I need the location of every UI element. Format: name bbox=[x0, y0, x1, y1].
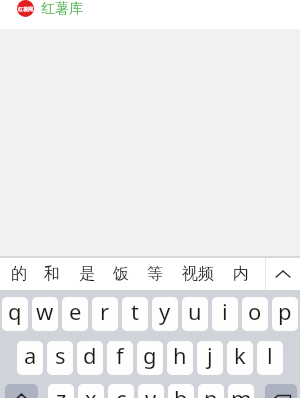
button[interactable]: m bbox=[228, 384, 254, 398]
staticText: k bbox=[234, 341, 246, 370]
button[interactable]: 内 bbox=[228, 258, 254, 290]
staticText: d bbox=[83, 341, 97, 370]
staticText: 等 bbox=[147, 264, 163, 284]
staticText: j bbox=[207, 341, 213, 370]
staticText: s bbox=[55, 341, 66, 370]
button[interactable]: r bbox=[92, 297, 118, 331]
button[interactable]: n bbox=[198, 384, 224, 398]
staticText: q bbox=[8, 297, 22, 326]
button[interactable]: 等 bbox=[142, 258, 168, 290]
staticText: h bbox=[173, 341, 187, 370]
staticText: 红薯库 bbox=[41, 0, 83, 17]
button[interactable]: 视频 bbox=[177, 258, 219, 290]
staticText: b bbox=[174, 384, 188, 398]
button[interactable]: u bbox=[182, 297, 208, 331]
button[interactable]: Backspace bbox=[265, 384, 297, 398]
button[interactable]: 红薯网 logo bbox=[17, 0, 34, 17]
staticText: f bbox=[116, 341, 124, 370]
staticText: 红薯网 bbox=[18, 6, 33, 12]
staticText: y bbox=[159, 297, 171, 326]
button[interactable]: p bbox=[272, 297, 298, 331]
staticText: 饭 bbox=[113, 264, 129, 284]
staticText: o bbox=[248, 297, 262, 326]
button[interactable]: k bbox=[227, 341, 253, 375]
staticText: p bbox=[278, 297, 292, 326]
staticText: a bbox=[24, 341, 37, 370]
staticText: z bbox=[56, 384, 67, 398]
staticText: n bbox=[204, 384, 218, 398]
staticText: 的 bbox=[11, 264, 27, 284]
button[interactable]: e bbox=[62, 297, 88, 331]
button[interactable]: f bbox=[107, 341, 133, 375]
button[interactable]: s bbox=[47, 341, 73, 375]
staticText: 内 bbox=[233, 264, 249, 284]
button[interactable]: 和 bbox=[39, 258, 65, 290]
button[interactable]: h bbox=[167, 341, 193, 375]
staticText: v bbox=[145, 384, 157, 398]
staticText: 是 bbox=[79, 264, 95, 284]
button[interactable]: 的 bbox=[6, 258, 32, 290]
staticText: m bbox=[231, 384, 252, 398]
button[interactable]: j bbox=[197, 341, 223, 375]
button[interactable]: y bbox=[152, 297, 178, 331]
button[interactable]: Expand candidates bbox=[266, 258, 300, 290]
button[interactable]: z bbox=[48, 384, 74, 398]
button[interactable]: c bbox=[108, 384, 134, 398]
button[interactable]: q bbox=[2, 297, 28, 331]
button[interactable]: t bbox=[122, 297, 148, 331]
button[interactable]: b bbox=[168, 384, 194, 398]
button[interactable]: l bbox=[257, 341, 283, 375]
button[interactable]: i bbox=[212, 297, 238, 331]
button[interactable]: g bbox=[137, 341, 163, 375]
button[interactable]: d bbox=[77, 341, 103, 375]
staticText: i bbox=[222, 297, 228, 326]
button[interactable]: a bbox=[17, 341, 43, 375]
button[interactable]: 饭 bbox=[108, 258, 134, 290]
staticText: e bbox=[69, 297, 82, 326]
staticText: g bbox=[143, 341, 157, 370]
staticText: w bbox=[36, 297, 54, 326]
staticText: x bbox=[85, 384, 97, 398]
button[interactable]: x bbox=[78, 384, 104, 398]
staticText: 视频 bbox=[182, 264, 214, 284]
button[interactable]: 是 bbox=[74, 258, 100, 290]
button[interactable]: w bbox=[32, 297, 58, 331]
button[interactable]: Shift bbox=[5, 384, 38, 398]
staticText: u bbox=[188, 297, 202, 326]
button[interactable]: o bbox=[242, 297, 268, 331]
staticText: t bbox=[131, 297, 139, 326]
staticText: l bbox=[267, 341, 273, 370]
staticText: 和 bbox=[44, 264, 60, 284]
staticText: c bbox=[116, 384, 127, 398]
staticText: r bbox=[100, 297, 110, 326]
button[interactable]: v bbox=[138, 384, 164, 398]
